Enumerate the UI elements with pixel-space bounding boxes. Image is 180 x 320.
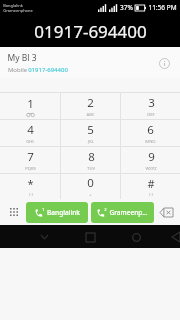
staticText: My Bl 3 <box>7 52 37 64</box>
button[interactable]: Backspace <box>156 202 176 222</box>
button[interactable]: 0 <box>61 174 120 199</box>
button[interactable]: 1 <box>0 93 60 119</box>
staticText: 1 <box>42 207 45 212</box>
staticText: 8 <box>88 149 95 165</box>
staticText: 6 <box>147 122 154 138</box>
button[interactable]: Home <box>126 227 146 247</box>
staticText: 1 <box>27 96 34 112</box>
staticText: GHI <box>26 139 34 145</box>
button[interactable]: 3 <box>121 93 180 119</box>
button[interactable]: 2 <box>61 93 120 119</box>
staticText: # <box>147 176 155 191</box>
staticText: TUV <box>87 166 95 172</box>
button[interactable]: 4 <box>0 120 60 146</box>
button[interactable]: Keypad options <box>4 202 24 222</box>
button[interactable]: Contact details <box>154 53 174 73</box>
staticText: 9 <box>148 149 155 165</box>
staticText: 7 <box>27 149 34 165</box>
staticText: Grameenp... <box>109 208 148 217</box>
button[interactable]: Recents <box>80 227 100 247</box>
staticText: Grameenphone <box>3 8 33 13</box>
staticText: DEF <box>147 112 155 118</box>
staticText: 2 <box>87 95 94 111</box>
staticText: ABC <box>86 112 95 118</box>
button[interactable]: * <box>0 174 60 199</box>
staticText: MNO <box>145 139 156 145</box>
button[interactable]: 5 <box>61 120 120 146</box>
staticText: ( ) <box>149 192 153 198</box>
staticText: Mobile <box>7 66 28 74</box>
staticText: 0 <box>87 175 94 191</box>
staticText: 37% <box>120 3 133 12</box>
button[interactable]: Back <box>172 227 180 247</box>
staticText: Banglalink <box>3 3 23 8</box>
button[interactable]: 2 <box>91 202 154 223</box>
staticText: 01917-694400 <box>28 66 68 74</box>
button[interactable]: 9 <box>121 147 180 173</box>
staticText: PQRS <box>25 166 36 172</box>
button[interactable]: 8 <box>61 147 120 173</box>
staticText: ( ) <box>29 192 33 198</box>
staticText: Banglalink <box>47 208 80 217</box>
staticText: 01917-694400 <box>34 20 147 43</box>
staticText: 5 <box>87 122 94 138</box>
staticText: 2 <box>104 207 107 212</box>
button[interactable]: Hide keyboard <box>34 227 54 247</box>
staticText: * <box>27 176 34 191</box>
staticText: 11:56 PM <box>148 3 177 12</box>
button[interactable]: # <box>121 174 180 199</box>
staticText: WXYZ <box>145 166 157 172</box>
staticText: + <box>89 192 92 198</box>
button[interactable]: 6 <box>121 120 180 146</box>
staticText: JKL <box>88 139 94 145</box>
button[interactable]: My Bl 3 <box>0 47 180 78</box>
staticText: 4 <box>27 122 34 138</box>
button[interactable]: 7 <box>0 147 60 173</box>
staticText: 3 <box>148 95 155 111</box>
button[interactable]: 1 <box>26 202 88 223</box>
